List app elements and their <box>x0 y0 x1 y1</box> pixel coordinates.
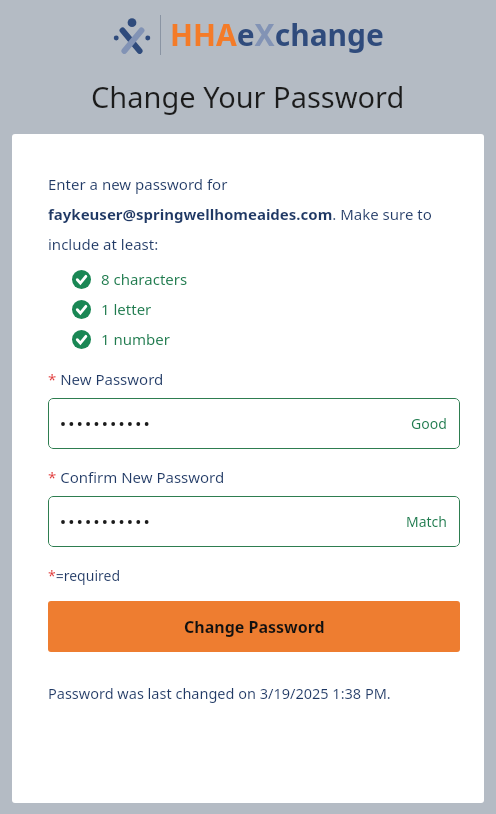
button[interactable]: Change Password <box>48 601 460 652</box>
staticText: Match <box>406 512 447 531</box>
staticText: *=required <box>48 566 121 585</box>
staticText: Enter a new password for faykeuser@sprin… <box>48 174 432 254</box>
staticText: Change Your Password <box>91 77 405 116</box>
button[interactable]: Good <box>48 398 460 449</box>
staticText: * Confirm New Password <box>48 467 225 487</box>
staticText: HHAeXchange <box>170 14 384 55</box>
staticText: 1 number <box>101 329 170 349</box>
other: HHAeXchange logo <box>113 16 151 54</box>
staticText: 8 characters <box>101 269 188 289</box>
button[interactable]: Match <box>48 496 460 547</box>
staticText: Good <box>411 414 447 433</box>
staticText: Password was last changed on 3/19/2025 1… <box>48 683 391 703</box>
staticText: * New Password <box>48 369 164 389</box>
staticText: Change Password <box>184 616 325 638</box>
staticText: 1 letter <box>101 299 152 319</box>
